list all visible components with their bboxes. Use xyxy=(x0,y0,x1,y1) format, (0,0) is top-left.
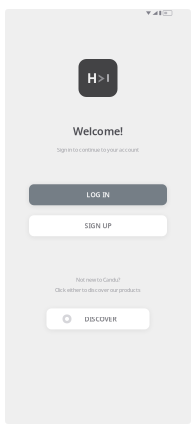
button[interactable]: DISCOVER xyxy=(46,308,149,329)
staticText: DISCOVER xyxy=(84,314,116,323)
staticText: Sign in to continue to your account xyxy=(57,146,139,153)
staticText: H xyxy=(87,69,97,87)
staticText: Welcome! xyxy=(73,124,123,138)
staticText: SIGN UP xyxy=(84,221,111,230)
button[interactable]: LOG IN xyxy=(29,184,167,205)
staticText: Click either to discover our products xyxy=(55,286,141,293)
staticText: Not new to Candu? xyxy=(76,276,120,283)
button[interactable]: SIGN UP xyxy=(29,215,167,236)
staticText: LOG IN xyxy=(86,190,109,199)
